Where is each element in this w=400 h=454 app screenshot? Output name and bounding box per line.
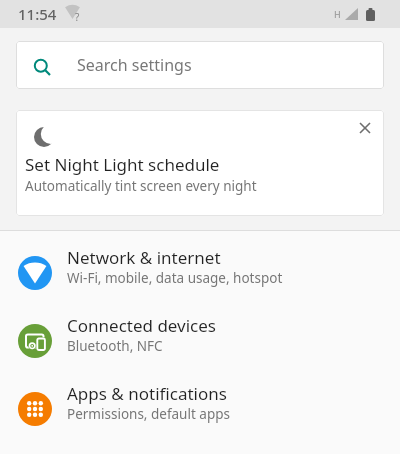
staticText: Bluetooth, NFC [67,337,163,355]
button[interactable] [358,121,372,135]
staticText: Connected devices [67,314,217,337]
staticText: Wi-Fi, mobile, data usage, hotspot [67,269,283,287]
button[interactable]: Network & internet [0,239,400,307]
staticText: Search settings [77,54,192,76]
button[interactable]: Connected devices [0,307,400,375]
staticText: Apps & notifications [67,382,227,405]
staticText: Network & internet [67,246,221,269]
button[interactable]: Search settings [16,41,384,89]
staticText: Permissions, default apps [67,405,230,423]
staticText: ? [75,10,80,24]
staticText: Set Night Light schedule [25,153,220,176]
staticText: H [334,8,341,20]
button[interactable]: Set Night Light schedule [16,110,384,216]
button[interactable]: Apps & notifications [0,375,400,443]
staticText: 11:54 [18,4,57,24]
staticText: Automatically tint screen every night [25,177,257,195]
